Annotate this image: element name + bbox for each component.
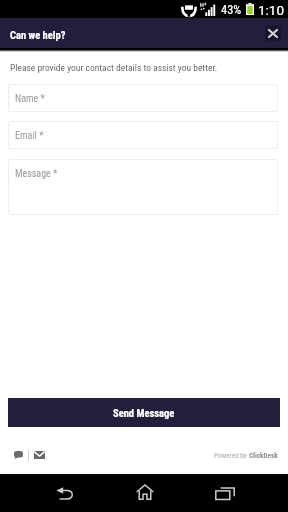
staticText: Send Message	[113, 407, 175, 419]
staticText: Can we help?	[10, 29, 66, 41]
staticText: 1:10	[258, 2, 285, 18]
button[interactable]: Email *	[8, 121, 278, 149]
staticText: Powered by	[214, 451, 249, 459]
button[interactable]: Message *	[8, 159, 278, 215]
staticText: Name *	[15, 93, 45, 105]
staticText: Please provide your contact details to a…	[10, 62, 218, 73]
button[interactable]: Live chat	[11, 448, 25, 462]
button[interactable]: Email us	[32, 448, 46, 462]
button[interactable]: Back	[46, 478, 84, 508]
staticText: Message *	[15, 168, 58, 180]
button[interactable]: Home	[126, 476, 164, 508]
button[interactable]: Recent apps	[205, 478, 245, 508]
staticText: ClickDesk	[249, 451, 278, 459]
button[interactable]: Close	[265, 25, 281, 41]
staticText: 43%	[221, 2, 242, 17]
button[interactable]: Send Message	[8, 398, 280, 427]
button[interactable]: Name *	[8, 84, 278, 112]
staticText: Email *	[15, 130, 44, 142]
